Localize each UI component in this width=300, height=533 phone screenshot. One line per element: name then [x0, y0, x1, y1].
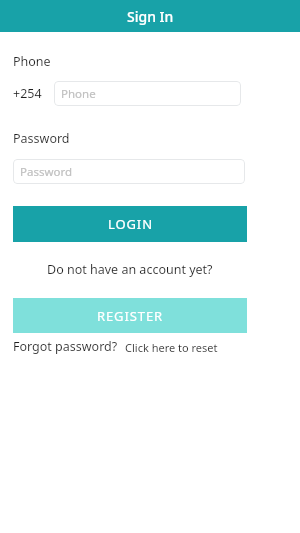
staticText: Phone [13, 53, 51, 70]
button[interactable]: REGISTER [13, 298, 247, 333]
button[interactable]: Password [13, 159, 245, 184]
staticText: Password [20, 164, 73, 180]
staticText: Click here to reset [125, 340, 218, 355]
staticText: REGISTER [97, 307, 164, 325]
staticText: Phone [61, 86, 96, 102]
staticText: LOGIN [108, 215, 153, 233]
staticText: Do not have an account yet? [47, 261, 213, 278]
button[interactable]: Click here to reset [125, 340, 218, 355]
staticText: Forgot password? [13, 338, 118, 355]
staticText: Password [13, 130, 70, 147]
button[interactable]: Phone [54, 81, 241, 106]
staticText: +254 [13, 85, 42, 102]
button[interactable]: LOGIN [13, 206, 247, 242]
staticText: Sign In [127, 7, 174, 26]
